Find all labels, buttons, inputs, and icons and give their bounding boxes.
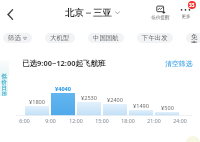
staticText: ¥2530: [81, 94, 97, 102]
staticText: 15:00: [95, 117, 109, 124]
staticText: ¥1800: [29, 98, 45, 106]
staticText: 北京: [65, 7, 84, 19]
staticText: ¥1490: [133, 102, 149, 110]
button[interactable]: Back: [2, 6, 18, 22]
staticText: 21:00: [147, 117, 161, 124]
staticText: 已选9:00~12:00起飞航班: [22, 58, 106, 68]
button[interactable]: 北京: [65, 6, 120, 19]
staticText: 下午出发: [142, 34, 168, 42]
staticText: 筛选: [8, 34, 21, 42]
button[interactable]: 低价日历: [0, 73, 8, 96]
button[interactable]: 清空筛选: [163, 57, 195, 70]
staticText: 33: [189, 2, 195, 8]
staticText: ¥4040: [55, 85, 71, 93]
staticText: 低价提醒: [151, 15, 170, 21]
staticText: 12:00: [69, 117, 83, 124]
button[interactable]: 中国国航: [88, 33, 124, 43]
staticText: 低价日历: [1, 73, 7, 96]
staticText: 三亚: [93, 7, 112, 19]
staticText: 18:00: [121, 117, 135, 124]
staticText: 大机型: [50, 34, 70, 42]
button[interactable]: 免费: [186, 33, 200, 43]
staticText: ¥2400: [107, 96, 123, 104]
button[interactable]: 大机型: [45, 33, 75, 43]
staticText: ¥500: [161, 104, 174, 112]
staticText: 免费: [191, 33, 198, 43]
staticText: 6:00: [19, 117, 30, 124]
button[interactable]: 筛选: [3, 33, 32, 43]
button[interactable]: 更多: [176, 5, 195, 20]
staticText: 9:00: [45, 117, 56, 124]
button[interactable]: 下午出发: [137, 33, 173, 43]
staticText: 中国国航: [93, 34, 119, 42]
button[interactable]: 低价提醒: [150, 5, 171, 21]
staticText: 24:00: [173, 117, 187, 124]
staticText: 更多: [181, 14, 191, 20]
